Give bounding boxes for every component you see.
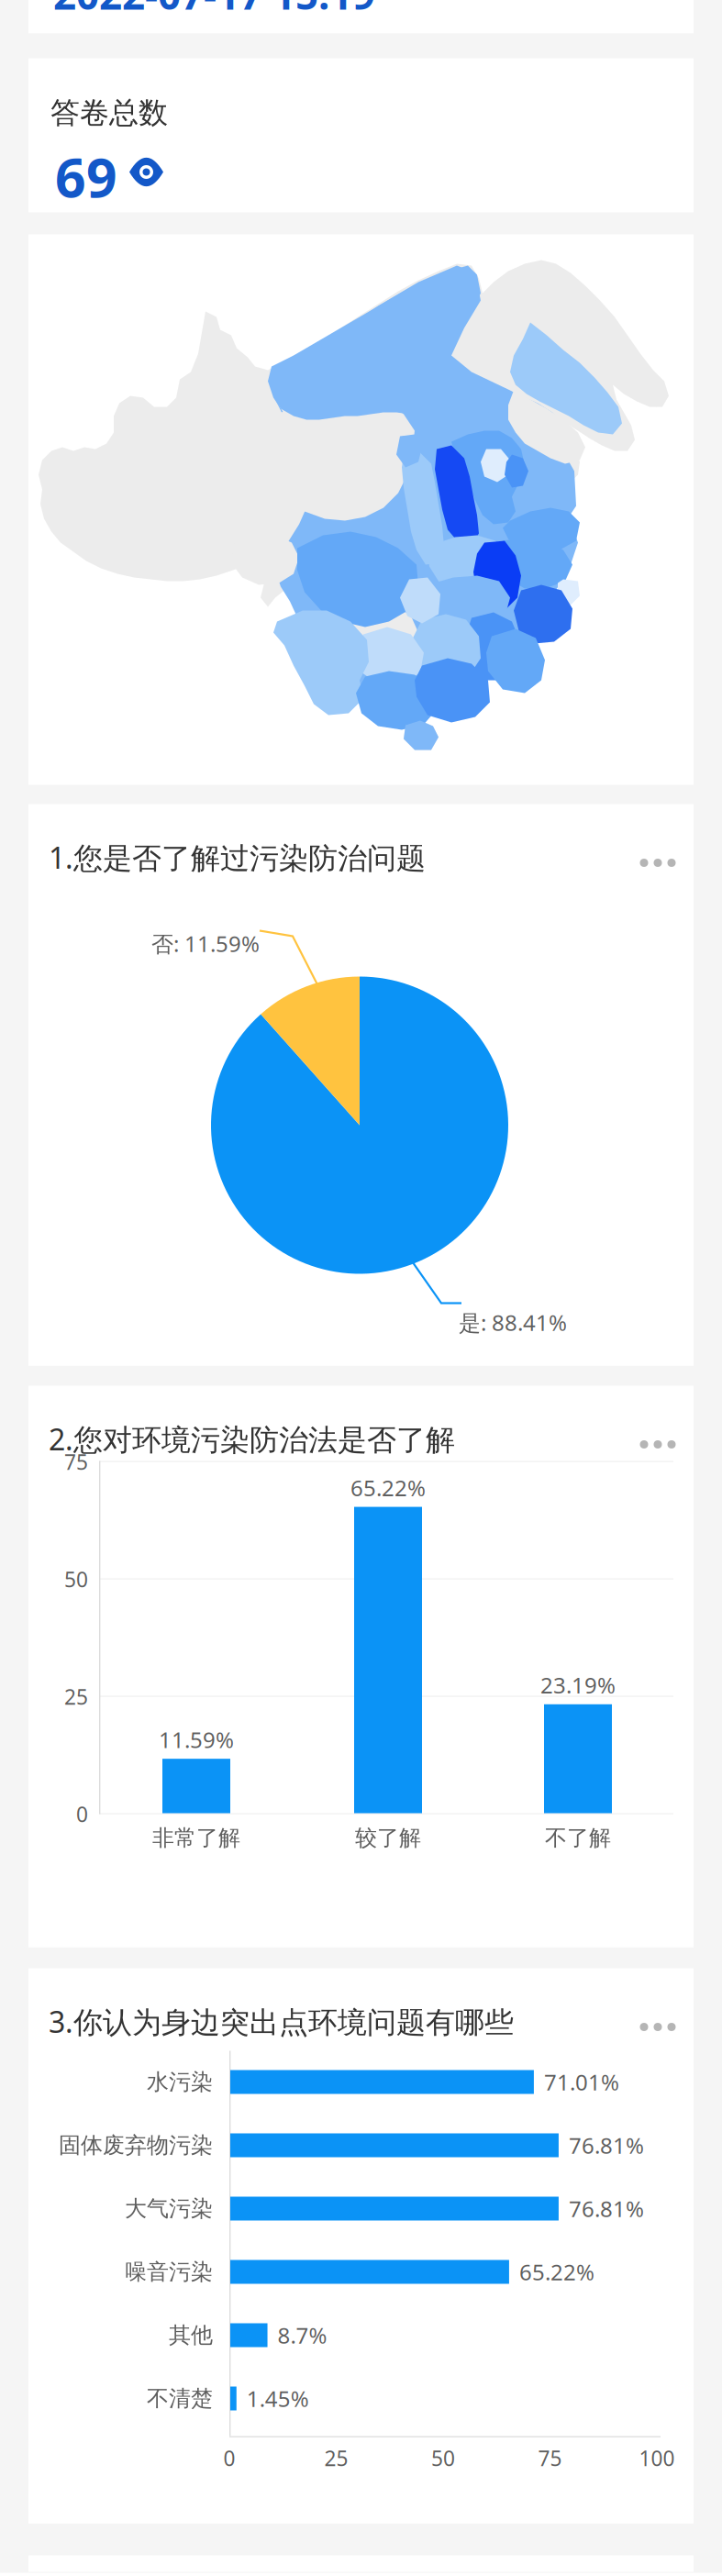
staticText: 答卷总数 (50, 95, 168, 131)
staticText: 固体废弃物污染 (59, 2132, 213, 2159)
staticText: 大气污染 (125, 2195, 213, 2222)
staticText: 75 (64, 1448, 88, 1476)
staticText: 8.7% (278, 2321, 327, 2350)
staticText: 水污染 (147, 2069, 213, 2096)
staticText: 50 (431, 2444, 455, 2472)
staticText: 1.您是否了解过污染防治问题 (49, 838, 426, 877)
staticText: 65.22% (350, 1473, 426, 1502)
button[interactable]: More options (615, 1417, 701, 1472)
staticText: 是: 88.41% (459, 1308, 567, 1337)
button[interactable]: More options (615, 1999, 701, 2054)
staticText: 噪音污染 (125, 2258, 213, 2285)
staticText: 1.45% (247, 2384, 309, 2413)
staticText: 3.你认为身边突出点环境问题有哪些 (49, 2002, 514, 2041)
staticText: 71.01% (544, 2067, 619, 2097)
staticText: 否: 11.59% (151, 929, 260, 958)
button[interactable]: More options (615, 835, 701, 890)
staticText: 非常了解 (152, 1824, 240, 1852)
staticText: 76.81% (569, 2131, 644, 2160)
staticText: 不清楚 (147, 2385, 213, 2412)
staticText: 100 (639, 2444, 675, 2472)
staticText: 11.59% (159, 1725, 234, 1754)
staticText: 较了解 (355, 1824, 421, 1852)
staticText: 2022-07-17 15:19 (53, 0, 375, 21)
staticText: 65.22% (519, 2257, 594, 2287)
staticText: 50 (64, 1565, 88, 1593)
staticText: 2.您对环境污染防治法是否了解 (49, 1419, 455, 1458)
staticText: 76.81% (569, 2194, 644, 2223)
staticText: 69 (55, 141, 117, 212)
staticText: 25 (324, 2444, 348, 2472)
staticText: 25 (64, 1683, 88, 1710)
staticText: 75 (538, 2444, 562, 2472)
staticText: 不了解 (545, 1824, 611, 1852)
staticText: 其他 (169, 2322, 213, 2349)
staticText: 23.19% (540, 1670, 616, 1700)
staticText: 0 (76, 1800, 88, 1828)
staticText: 0 (223, 2444, 235, 2472)
